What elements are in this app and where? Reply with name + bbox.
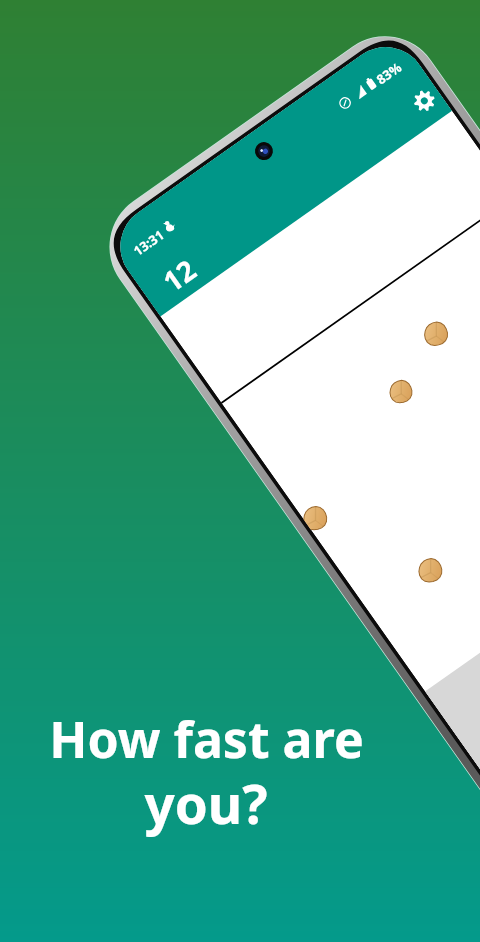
staticText: How fast are	[49, 705, 364, 773]
staticText: you?	[144, 767, 268, 839]
